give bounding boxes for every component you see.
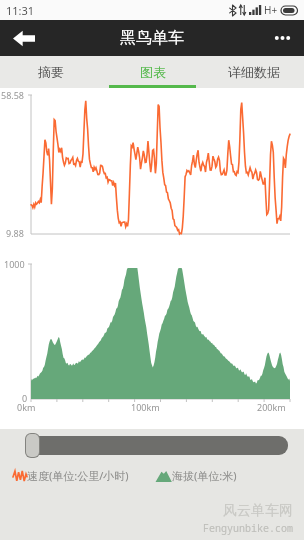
staticText: 图表 — [140, 64, 166, 80]
button[interactable]: 摘要 — [0, 56, 102, 88]
button[interactable]: 图表 — [102, 56, 203, 88]
staticText: 200km — [257, 401, 286, 413]
button[interactable]: Back — [0, 20, 48, 56]
staticText: H+ — [264, 3, 278, 17]
button[interactable]: Range handle — [26, 434, 39, 457]
staticText: 黑鸟单车 — [120, 28, 184, 48]
staticText: 详细数据 — [228, 64, 280, 80]
staticText: 0km — [17, 401, 36, 413]
button[interactable]: Chart range scrollbar — [29, 436, 288, 455]
staticText: 100km — [131, 401, 160, 413]
staticText: 风云单车网 — [223, 502, 293, 520]
staticText: 0 — [22, 392, 28, 404]
staticText: 速度(单位:公里/小时) — [27, 468, 129, 483]
staticText: 海拔(单位:米) — [172, 468, 237, 483]
staticText: 9.88 — [6, 227, 24, 239]
button[interactable]: More options — [260, 20, 304, 56]
staticText: 58.58 — [1, 89, 25, 101]
staticText: 11:31 — [6, 3, 35, 18]
staticText: 1000 — [4, 258, 25, 270]
button[interactable]: 详细数据 — [203, 56, 304, 88]
staticText: Fengyunbike.com — [203, 521, 293, 535]
staticText: 摘要 — [38, 64, 64, 80]
